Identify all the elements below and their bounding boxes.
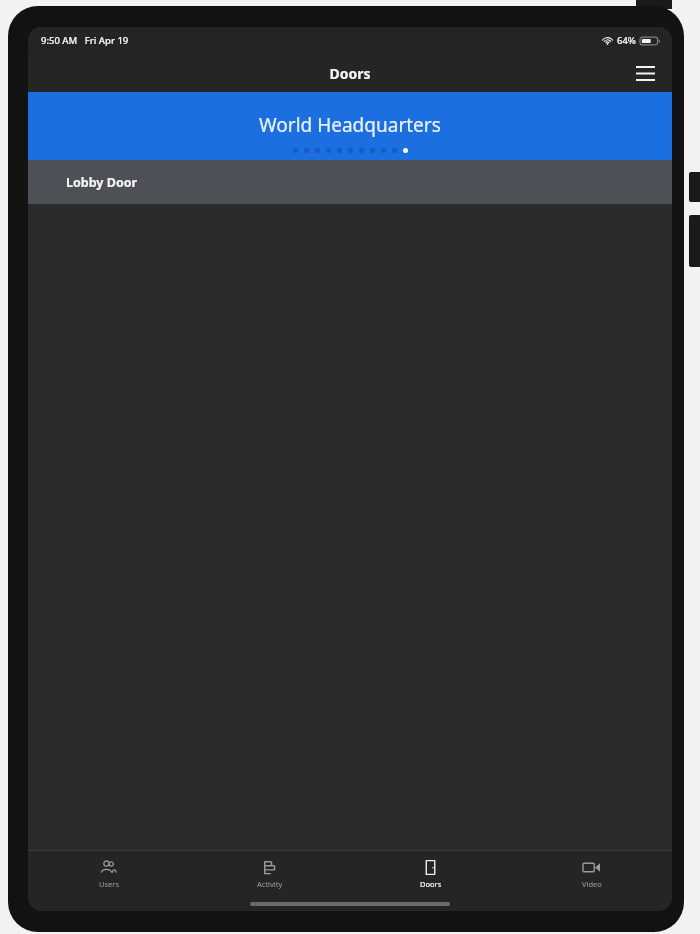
button[interactable]: Menu	[628, 56, 662, 90]
staticText: Doors	[329, 64, 371, 83]
button[interactable]: Activity	[189, 851, 350, 897]
button[interactable]: World Headquarters	[28, 92, 672, 160]
staticText: Users	[99, 879, 119, 889]
staticText: Doors	[420, 879, 442, 889]
staticText: World Headquarters	[259, 112, 441, 138]
staticText: 64%	[617, 34, 636, 47]
staticText: Video	[582, 879, 602, 889]
staticText: Lobby Door	[66, 174, 138, 191]
button[interactable]: Video	[511, 851, 672, 897]
staticText: 9:50 AM Fri Apr 19	[41, 34, 129, 47]
button[interactable]: Users	[28, 851, 189, 897]
button[interactable]: Lobby Door	[28, 160, 672, 204]
button[interactable]: Doors	[350, 851, 511, 897]
staticText: Activity	[257, 879, 283, 889]
